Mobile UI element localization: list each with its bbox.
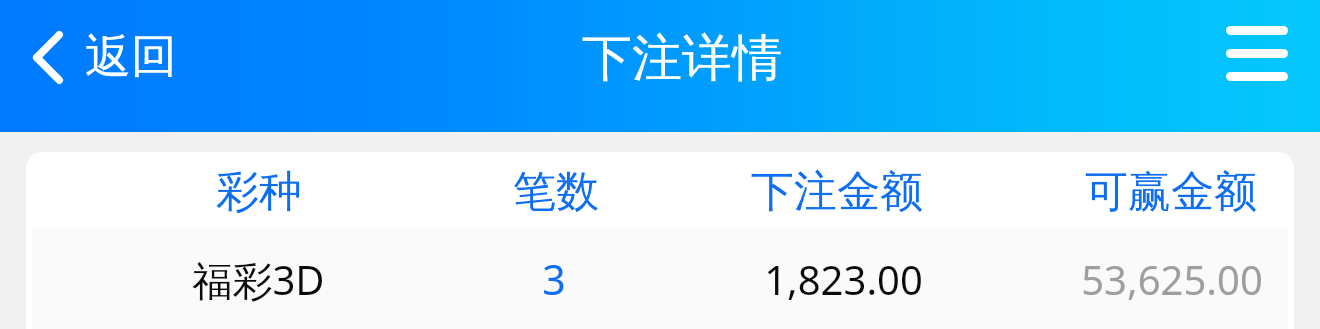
- staticText: 笔数: [513, 165, 599, 219]
- staticText: 下注详情: [582, 27, 782, 90]
- button[interactable]: 福彩3D: [26, 228, 1294, 329]
- button[interactable]: 返回: [0, 14, 201, 100]
- staticText: 福彩3D: [192, 252, 325, 307]
- staticText: 53,625.00: [1081, 252, 1263, 306]
- staticText: 3: [542, 251, 566, 307]
- staticText: 下注金额: [751, 165, 923, 219]
- button[interactable]: Menu: [1202, 8, 1320, 99]
- staticText: 可赢金额: [1085, 165, 1257, 219]
- staticText: 彩种: [216, 165, 302, 219]
- staticText: 返回: [85, 28, 177, 86]
- staticText: 1,823.00: [764, 252, 923, 306]
